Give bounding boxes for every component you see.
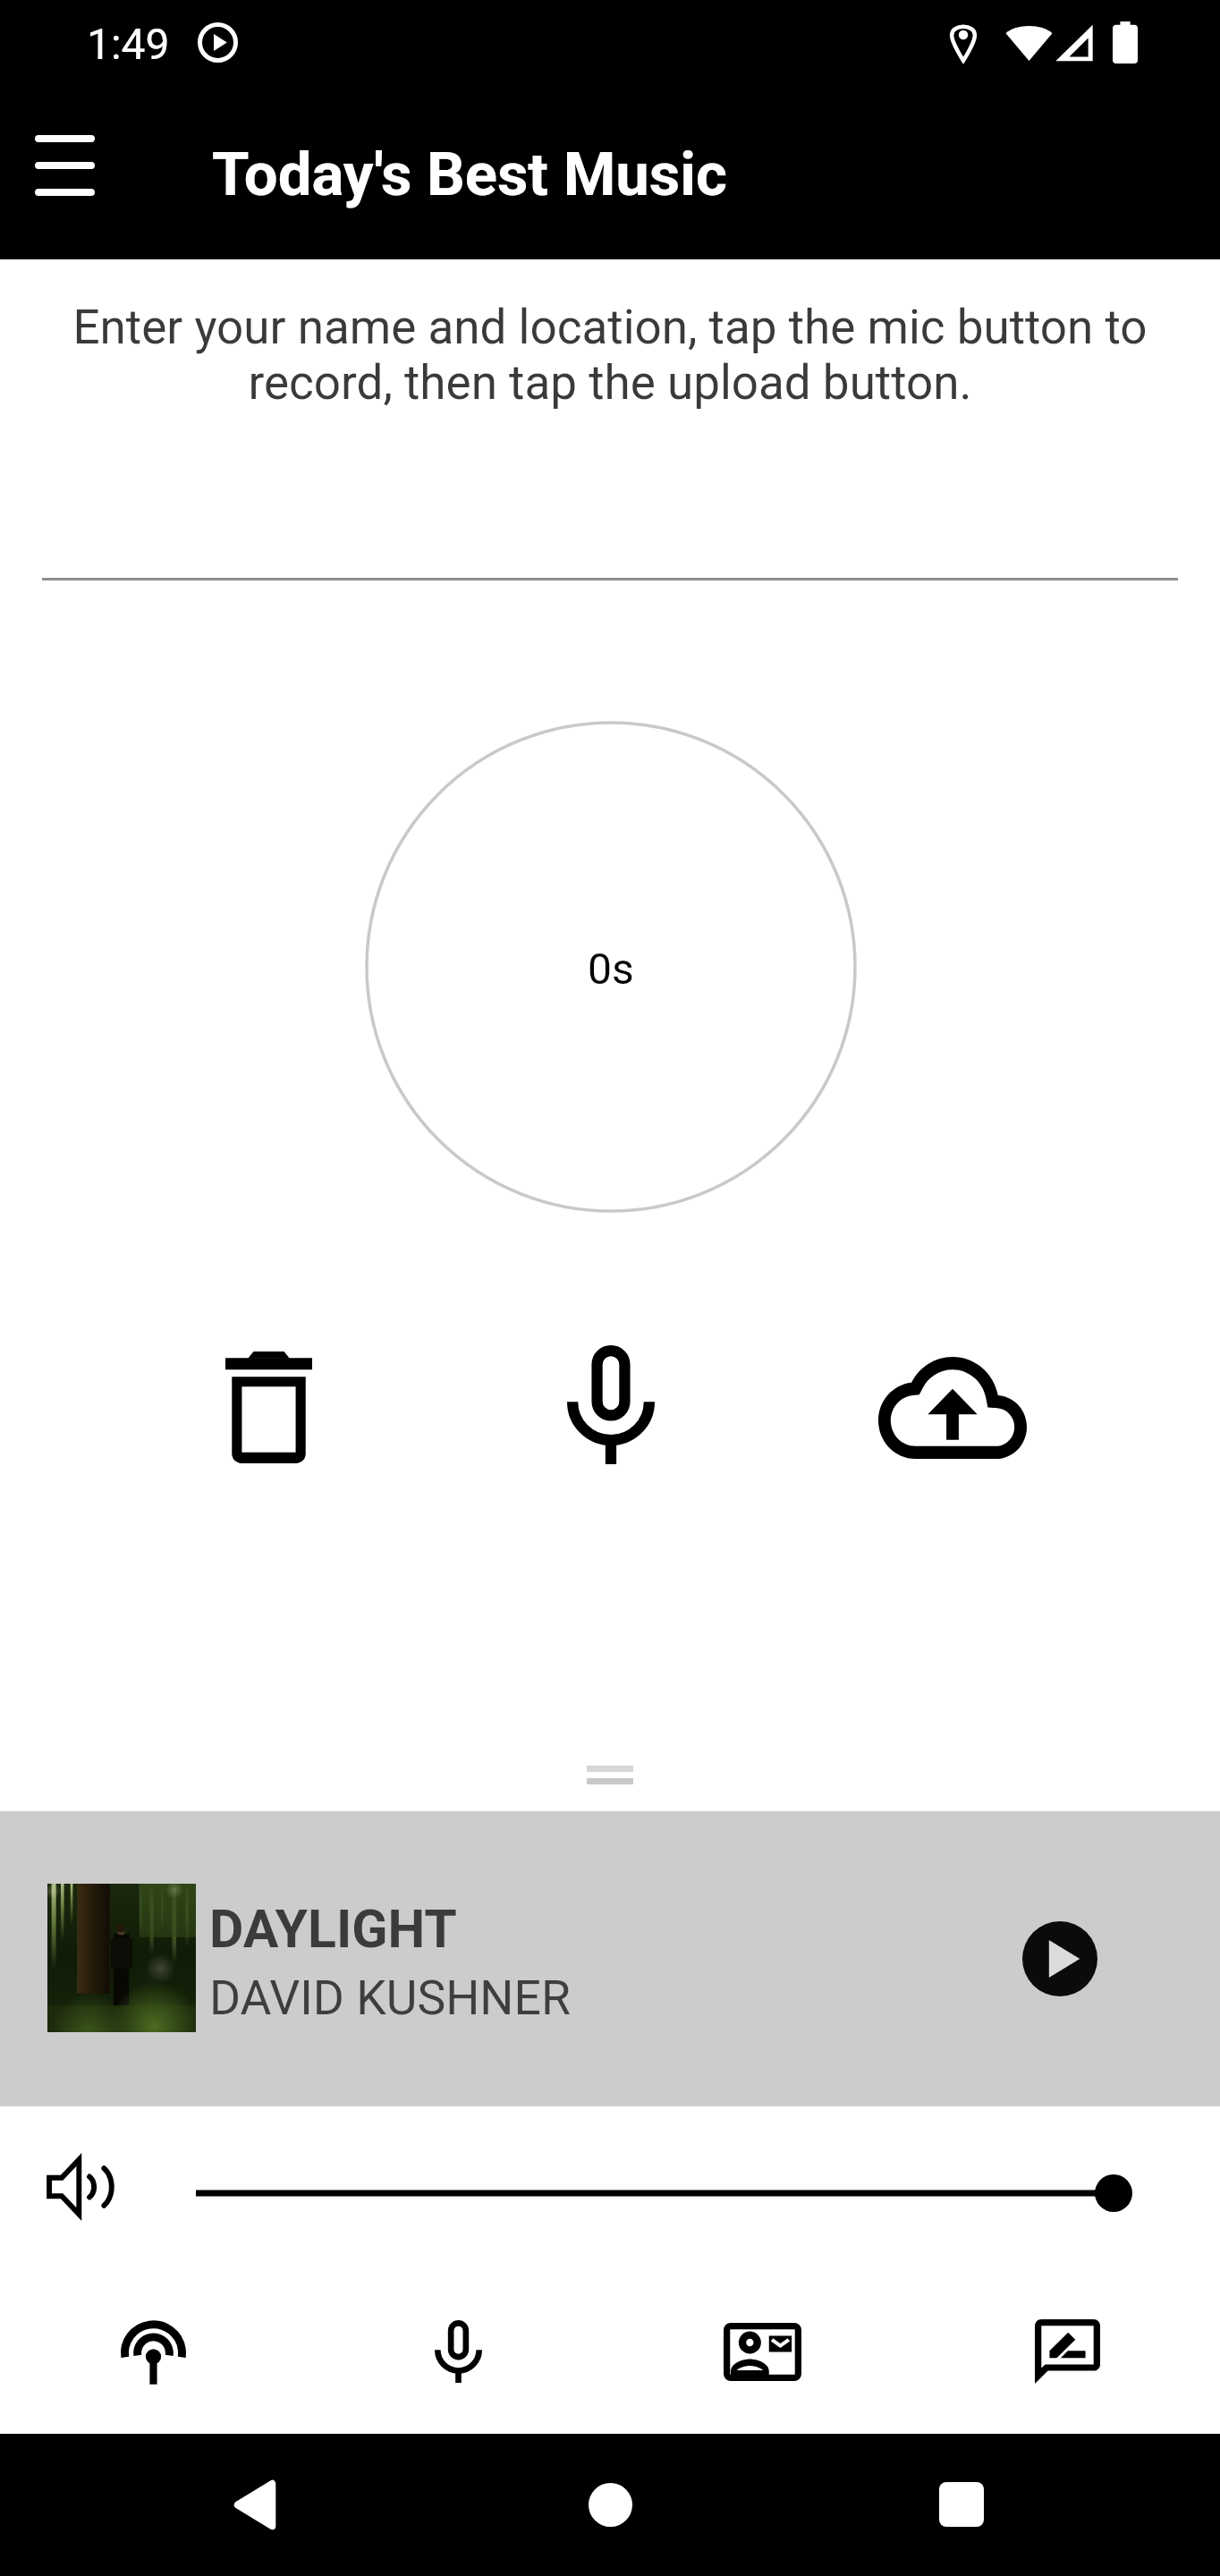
button[interactable]: Contact mail [708, 2298, 816, 2405]
staticText: 0s [588, 944, 634, 994]
button[interactable]: Upload [878, 1357, 1027, 1459]
button[interactable]: Record [557, 1333, 665, 1476]
button[interactable]: Home [561, 2455, 659, 2554]
button[interactable]: Microphone [404, 2298, 512, 2405]
button[interactable]: Menu [13, 107, 116, 224]
staticText: DAVID KUSHNER [209, 1970, 571, 2026]
staticText: 1:49 [87, 19, 170, 69]
button[interactable]: Recents [912, 2455, 1011, 2554]
button[interactable]: Volume slider [179, 2152, 1154, 2224]
button[interactable]: Rate review [1013, 2298, 1121, 2405]
button[interactable]: Play [1013, 1912, 1106, 2004]
button[interactable]: Broadcast [99, 2298, 207, 2405]
staticText: DAYLIGHT [209, 1898, 457, 1960]
button[interactable]: Name and location field [42, 465, 1178, 580]
button[interactable]: Delete recording [215, 1335, 322, 1479]
staticText: Enter your name and location, tap the mi… [36, 300, 1184, 411]
button[interactable]: Back [206, 2455, 304, 2554]
button[interactable]: DAYLIGHT [0, 1811, 1220, 2106]
staticText: Today's Best Music [212, 140, 727, 210]
